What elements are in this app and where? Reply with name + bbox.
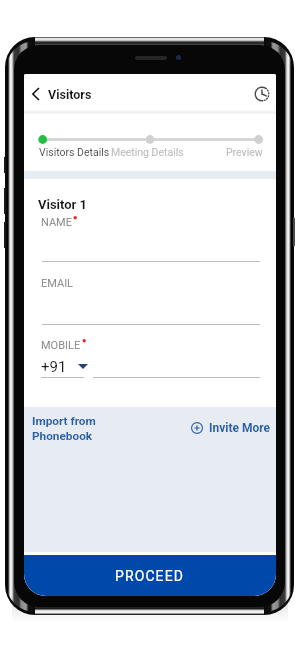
staticText: Visitor 1 <box>38 197 88 212</box>
button[interactable]: Invite More <box>190 420 272 436</box>
button[interactable]: History <box>250 82 274 106</box>
staticText: MOBILE <box>41 339 81 352</box>
staticText: Phonebook <box>32 429 93 443</box>
staticText: PROCEED <box>115 568 185 584</box>
button[interactable]: Preview <box>226 146 263 158</box>
staticText: Invite More <box>209 421 271 435</box>
staticText: Import from <box>32 414 96 428</box>
button[interactable]: +91 <box>41 358 88 376</box>
staticText: Visitors <box>48 87 92 102</box>
button[interactable]: Meeting Details <box>111 146 184 158</box>
button[interactable]: Back <box>25 84 45 104</box>
staticText: NAME <box>41 216 72 229</box>
button[interactable]: Visitors Details <box>39 146 110 158</box>
button[interactable]: Import from <box>31 413 97 444</box>
staticText: EMAIL <box>41 277 74 290</box>
button[interactable]: PROCEED <box>24 555 276 596</box>
staticText: +91 <box>41 358 67 376</box>
